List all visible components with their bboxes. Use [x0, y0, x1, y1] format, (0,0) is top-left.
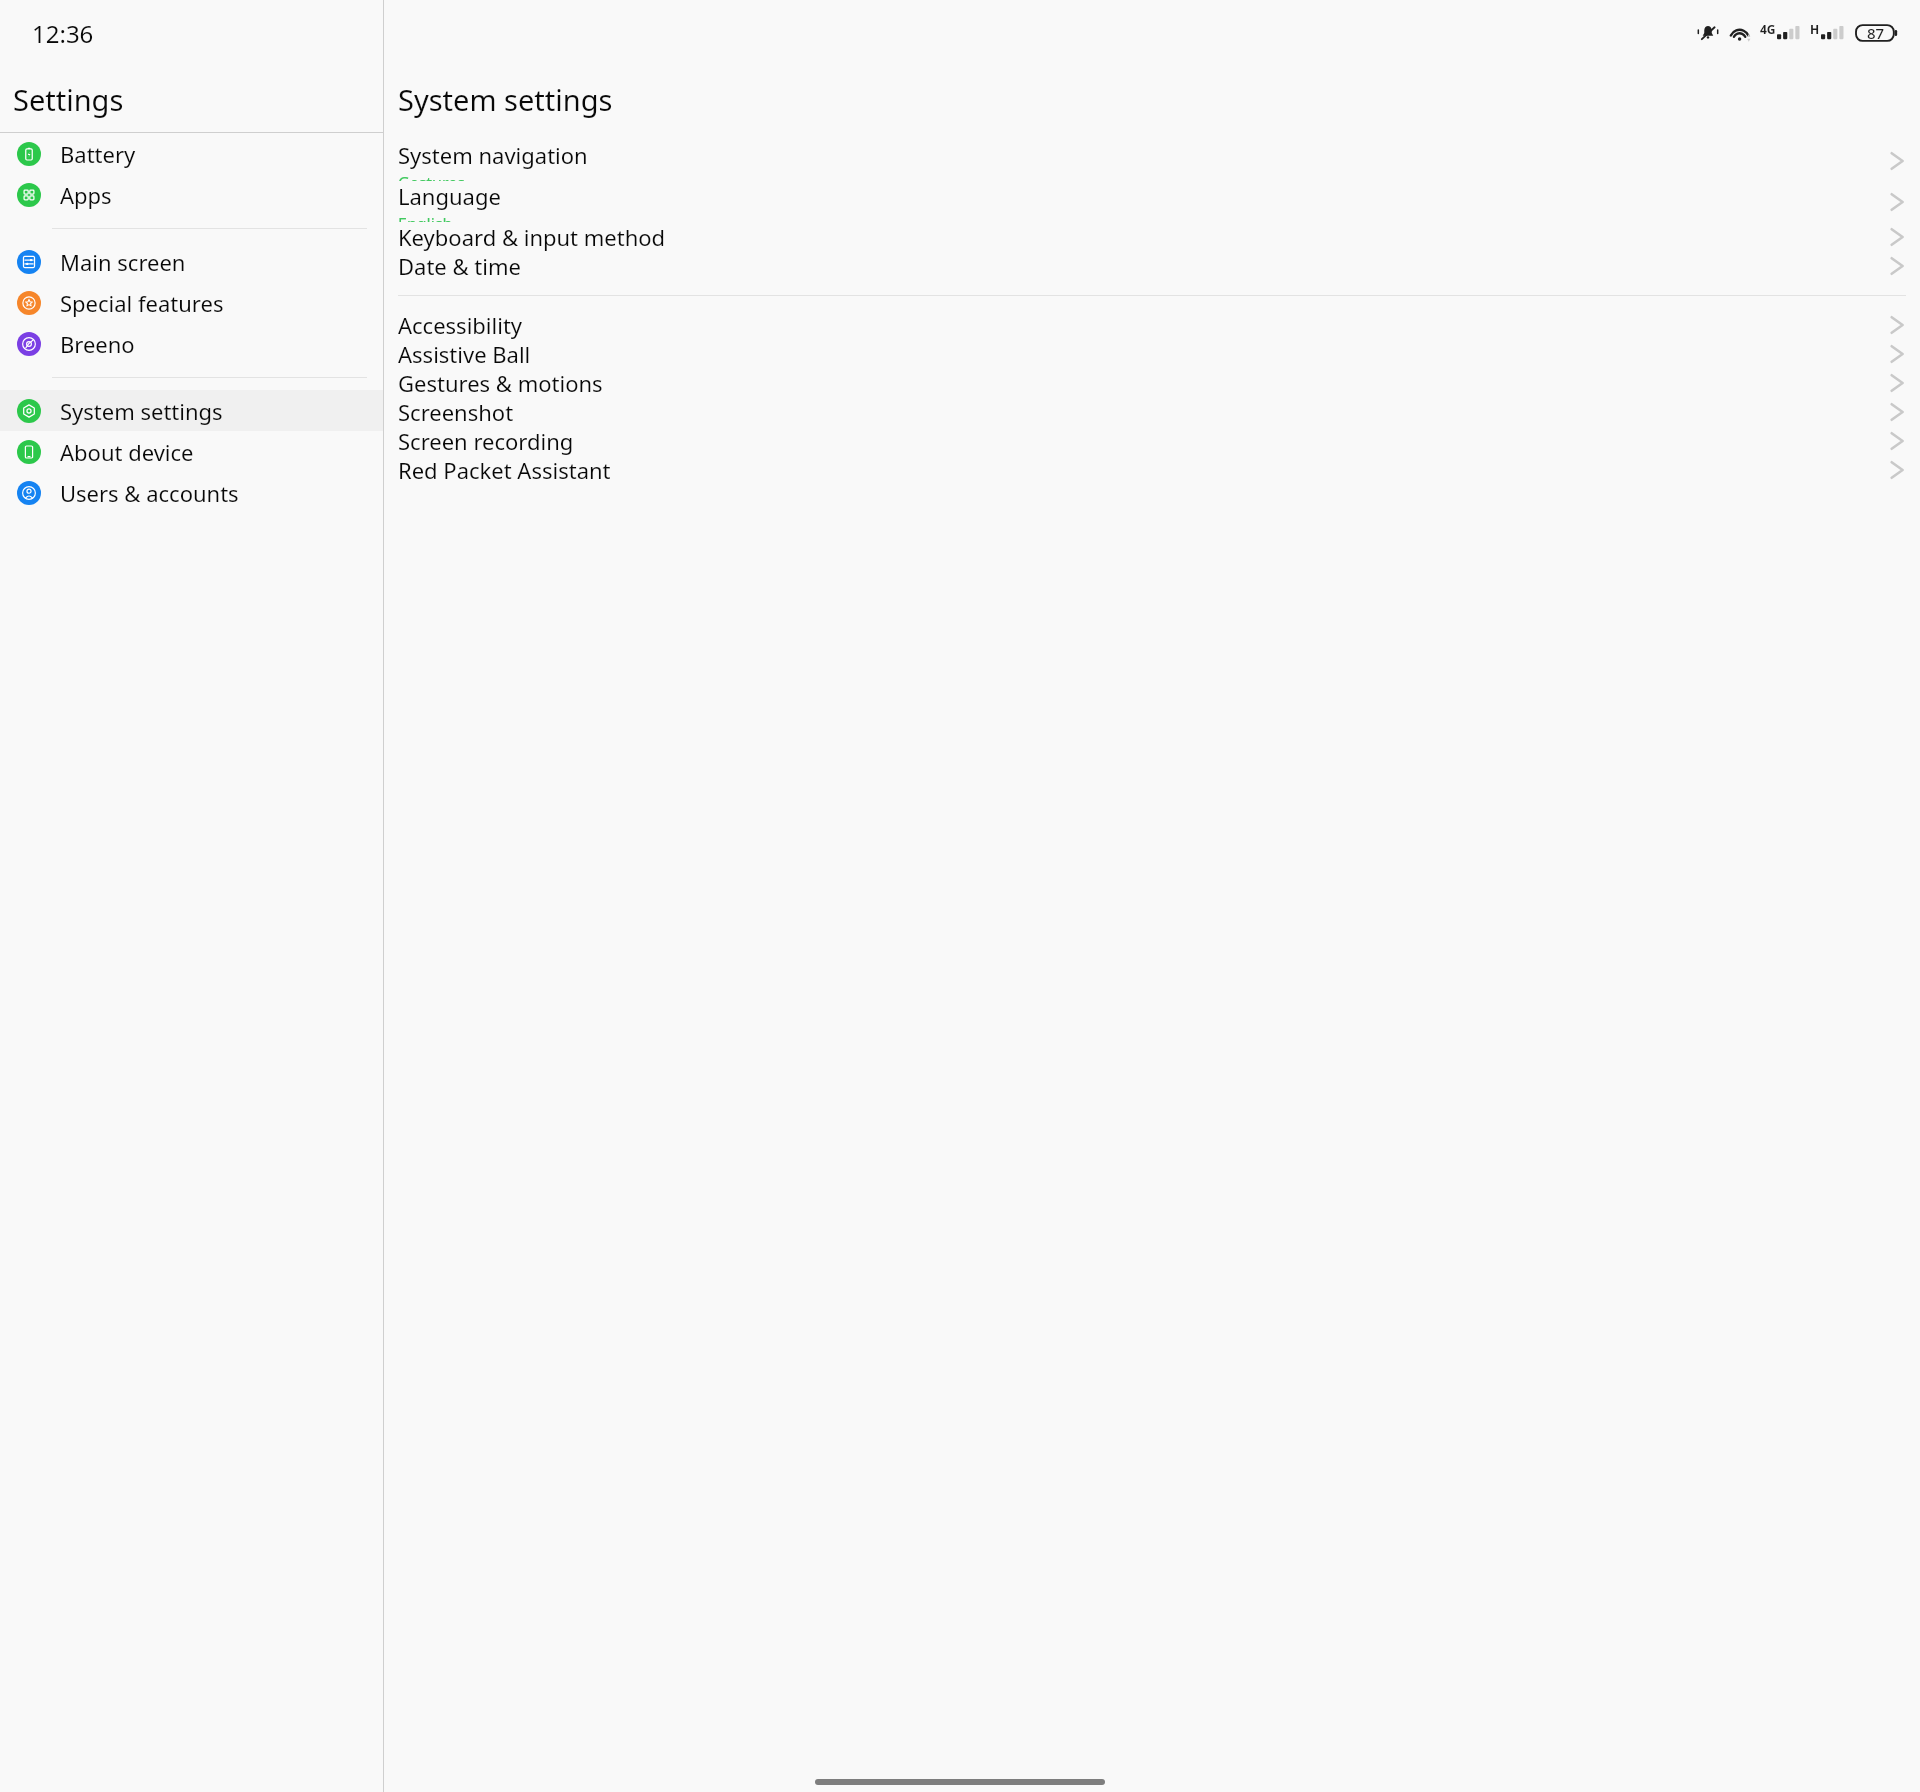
button[interactable]: Accessibility	[384, 310, 1920, 339]
other: Battery 87 percent	[1856, 22, 1898, 44]
staticText: Keyboard & input method	[398, 222, 666, 251]
staticText: Main screen	[60, 247, 186, 277]
staticText: H	[1810, 21, 1820, 37]
button[interactable]: Gestures & motions	[384, 368, 1920, 397]
staticText: Accessibility	[398, 310, 523, 339]
button[interactable]: Keyboard & input method	[384, 222, 1920, 251]
button[interactable]: Assistive Ball	[384, 339, 1920, 368]
staticText: 87	[1867, 23, 1885, 43]
staticText: Language	[398, 181, 501, 211]
staticText: Assistive Ball	[398, 339, 531, 368]
button[interactable]: Battery	[0, 133, 383, 174]
button[interactable]: Main screen	[0, 241, 383, 282]
button[interactable]: Screen recording	[384, 426, 1920, 455]
staticText: Battery	[60, 139, 136, 169]
staticText: Users & accounts	[60, 478, 239, 508]
button[interactable]: Users & accounts	[0, 472, 383, 513]
staticText: Settings	[13, 80, 124, 119]
staticText: Screen recording	[398, 426, 574, 455]
button[interactable]: About device	[0, 431, 383, 472]
button[interactable]: Special features	[0, 282, 383, 323]
button[interactable]: Date & time	[384, 251, 1920, 280]
button[interactable]: Apps	[0, 174, 383, 215]
staticText: Date & time	[398, 251, 521, 280]
button[interactable]: Breeno	[0, 323, 383, 364]
other: Wi-Fi	[1729, 22, 1752, 45]
other: Silent mode	[1697, 22, 1719, 44]
staticText: Special features	[60, 288, 224, 318]
staticText: System settings	[398, 80, 613, 119]
button[interactable]: Screenshot	[384, 397, 1920, 426]
staticText: Breeno	[60, 329, 135, 359]
staticText: 4G	[1760, 21, 1776, 37]
staticText: Screenshot	[398, 397, 514, 426]
staticText: Gestures & motions	[398, 368, 603, 397]
staticText: System settings	[60, 396, 223, 426]
button[interactable]: System settings	[0, 390, 383, 431]
button[interactable]: Red Packet Assistant	[384, 455, 1920, 484]
staticText: Red Packet Assistant	[398, 455, 611, 484]
staticText: Apps	[60, 180, 112, 210]
button[interactable]: System navigation	[384, 140, 1920, 181]
staticText: System navigation	[398, 140, 588, 170]
button[interactable]: Language	[384, 181, 1920, 222]
staticText: About device	[60, 437, 194, 467]
staticText: English	[398, 213, 453, 222]
staticText: Gestures	[398, 172, 465, 181]
staticText: 12:36	[32, 17, 94, 50]
